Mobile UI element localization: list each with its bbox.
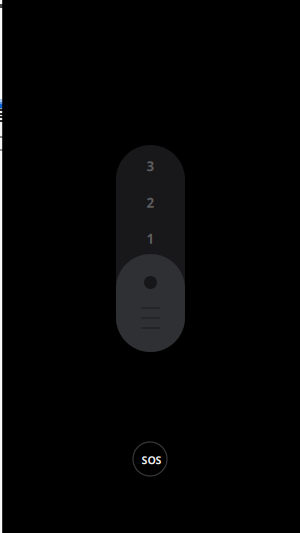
staticText: 3 bbox=[146, 157, 154, 175]
staticText: 1 bbox=[146, 230, 154, 247]
button[interactable]: Slide to power off bbox=[116, 254, 185, 352]
staticText: SOS bbox=[141, 453, 161, 467]
staticText: 2 bbox=[146, 194, 154, 211]
button[interactable]: Emergency SOS bbox=[128, 437, 172, 481]
